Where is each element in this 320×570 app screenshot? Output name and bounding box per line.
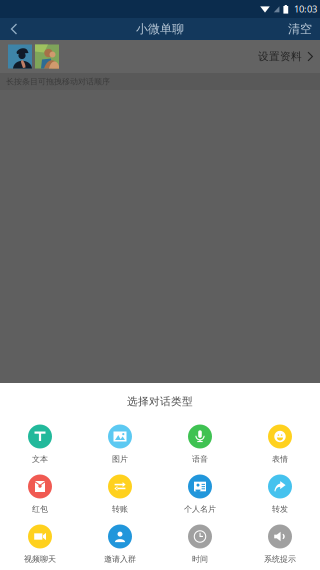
button[interactable]: 系统提示	[240, 519, 320, 569]
button[interactable]: 转发	[240, 469, 320, 519]
button[interactable]: 红包	[0, 469, 80, 519]
staticText: 清空	[288, 22, 312, 36]
button[interactable]: 图片	[80, 419, 160, 469]
button[interactable]: 个人名片	[160, 469, 240, 519]
staticText: 设置资料	[258, 50, 302, 63]
staticText: 系统提示	[264, 554, 296, 564]
staticText: 语音	[192, 454, 208, 464]
button[interactable]: 设置资料	[258, 50, 320, 63]
staticText: 邀请入群	[104, 554, 136, 564]
staticText: 文本	[32, 454, 48, 464]
staticText: 转账	[112, 504, 128, 514]
staticText: 时间	[192, 554, 208, 564]
button[interactable]: 文本	[0, 419, 80, 469]
button[interactable]: 视频聊天	[0, 519, 80, 569]
button[interactable]: 语音	[160, 419, 240, 469]
staticText: 图片	[112, 454, 128, 464]
button[interactable]: 转账	[80, 469, 160, 519]
button[interactable]: 表情	[240, 419, 320, 469]
staticText: 转发	[272, 504, 288, 514]
button[interactable]: 时间	[160, 519, 240, 569]
staticText: 个人名片	[184, 504, 216, 514]
button[interactable]: 邀请入群	[80, 519, 160, 569]
staticText: 小微单聊	[136, 22, 184, 36]
staticText: 长按条目可拖拽移动对话顺序	[6, 77, 110, 86]
button[interactable]: 清空	[288, 18, 320, 40]
staticText: 红包	[32, 504, 48, 514]
staticText: 选择对话类型	[127, 395, 193, 408]
staticText: 10:03	[294, 3, 317, 15]
button[interactable]: Back	[0, 18, 25, 40]
staticText: 表情	[272, 454, 288, 464]
staticText: 视频聊天	[24, 554, 56, 564]
